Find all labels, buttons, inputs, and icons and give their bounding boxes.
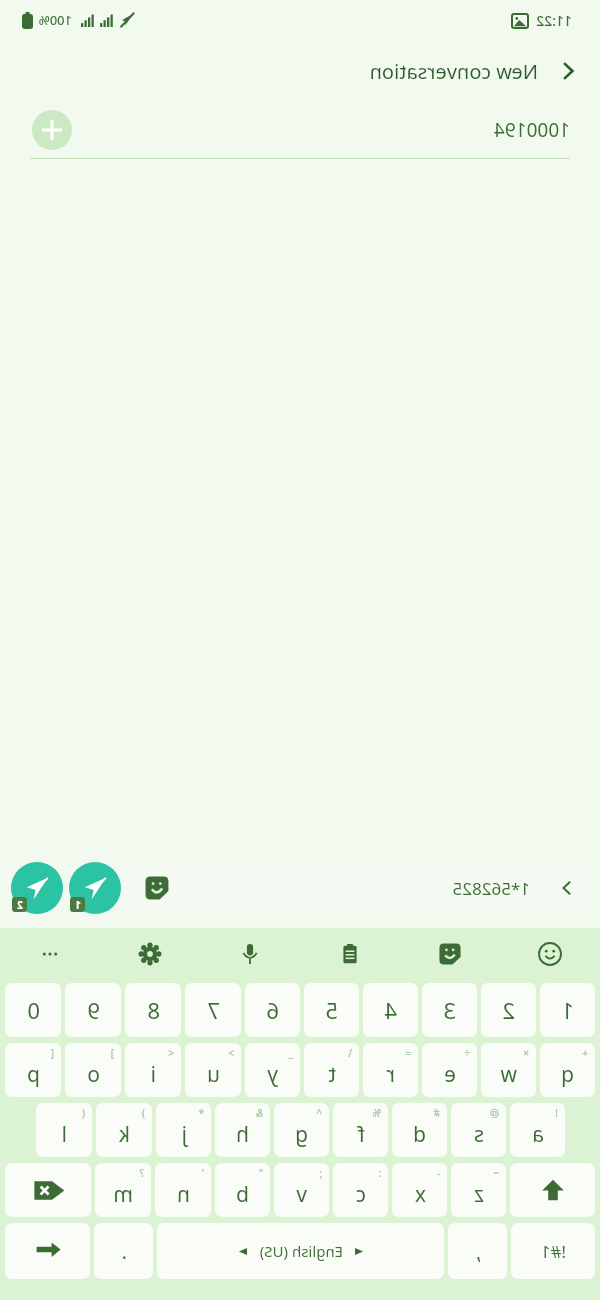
staticText: : <box>378 1166 381 1180</box>
button[interactable]: 9 <box>65 983 121 1037</box>
button[interactable]: Voice input <box>200 928 300 980</box>
button[interactable]: 2 <box>481 983 536 1037</box>
button[interactable]: # <box>392 1103 447 1157</box>
button[interactable]: Emoji <box>500 928 600 980</box>
staticText: = <box>405 1046 411 1060</box>
button[interactable]: 3 <box>422 983 477 1037</box>
staticText: m <box>113 1180 133 1209</box>
button[interactable]: × <box>481 1043 536 1097</box>
button[interactable]: ÷ <box>422 1043 477 1097</box>
staticText: _ <box>288 1046 293 1060</box>
staticText: 1 <box>561 995 574 1025</box>
staticText: f <box>357 1120 365 1149</box>
button[interactable]: & <box>215 1103 270 1157</box>
staticText: 0 <box>27 995 40 1025</box>
staticText: 1 <box>75 898 81 912</box>
staticText: * <box>198 1106 204 1120</box>
button[interactable]: % <box>333 1103 388 1157</box>
button[interactable]: \ <box>304 1043 359 1097</box>
staticText: @ <box>490 1106 499 1120</box>
button[interactable]: ) <box>96 1103 152 1157</box>
staticText: , <box>475 1238 481 1265</box>
button[interactable]: = <box>363 1043 418 1097</box>
staticText: j <box>181 1120 187 1149</box>
staticText: o <box>87 1060 100 1089</box>
staticText: ( <box>82 1106 85 1120</box>
button[interactable]: 5 <box>304 983 359 1037</box>
staticText: c <box>355 1180 366 1209</box>
button[interactable]: 7 <box>185 983 241 1037</box>
staticText: 9 <box>87 995 100 1025</box>
button[interactable]: " <box>215 1163 270 1217</box>
button[interactable]: More options <box>0 928 100 980</box>
button[interactable]: Stickers <box>400 928 500 980</box>
staticText: p <box>27 1060 40 1089</box>
button[interactable]: * <box>156 1103 211 1157</box>
staticText: 100% <box>38 11 72 29</box>
button[interactable]: ; <box>274 1163 329 1217</box>
button[interactable]: !#1 <box>511 1223 595 1279</box>
button[interactable]: 1*562825 <box>130 861 592 915</box>
staticText: q <box>561 1060 574 1089</box>
button[interactable]: 1 <box>540 983 595 1037</box>
button[interactable]: @ <box>451 1103 506 1157</box>
button[interactable]: Send with SIM 1 <box>66 859 124 917</box>
staticText: v <box>296 1180 307 1209</box>
button[interactable]: [ <box>5 1043 61 1097</box>
staticText: [ <box>50 1046 54 1060</box>
other: Expand <box>556 877 578 899</box>
staticText: > <box>228 1046 234 1060</box>
button[interactable]: 4 <box>363 983 418 1037</box>
button[interactable]: English (US) <box>157 1223 444 1279</box>
button[interactable]: Add recipient <box>30 108 74 152</box>
staticText: 1*562825 <box>452 877 530 900</box>
staticText: 2 <box>502 995 515 1025</box>
staticText: d <box>413 1120 426 1149</box>
button[interactable]: ^ <box>274 1103 329 1157</box>
button[interactable]: , <box>448 1223 507 1279</box>
staticText: ÷ <box>464 1046 470 1060</box>
button[interactable]: ' <box>155 1163 211 1217</box>
staticText: b <box>236 1180 249 1209</box>
button[interactable]: ( <box>36 1103 92 1157</box>
button[interactable]: : <box>333 1163 388 1217</box>
button[interactable]: 6 <box>245 983 300 1037</box>
button[interactable]: Enter <box>5 1223 90 1279</box>
button[interactable]: 8 <box>125 983 181 1037</box>
staticText: ^ <box>316 1106 322 1120</box>
button[interactable]: Clipboard <box>300 928 400 980</box>
button[interactable]: ? <box>95 1163 151 1217</box>
other: Back <box>554 57 582 85</box>
button[interactable]: Keyboard settings <box>100 928 200 980</box>
button[interactable]: _ <box>245 1043 300 1097</box>
staticText: 11:22 <box>536 11 572 30</box>
staticText: New conversation <box>369 58 538 85</box>
staticText: t <box>328 1060 336 1089</box>
staticText: r <box>386 1060 395 1089</box>
button[interactable]: Backspace <box>5 1163 91 1217</box>
button[interactable]: - <box>392 1163 447 1217</box>
staticText: 7 <box>207 995 220 1025</box>
staticText: 8 <box>147 995 160 1025</box>
button[interactable]: New conversation <box>369 57 582 85</box>
button[interactable]: 0 <box>5 983 61 1037</box>
staticText: s <box>473 1120 484 1149</box>
button[interactable]: ~ <box>451 1163 506 1217</box>
staticText: 5 <box>325 995 338 1025</box>
staticText: !#1 <box>540 1240 566 1263</box>
button[interactable]: Shift <box>510 1163 595 1217</box>
button[interactable]: > <box>185 1043 241 1097</box>
staticText: ; <box>319 1166 322 1180</box>
staticText: a <box>532 1120 544 1149</box>
button[interactable]: < <box>125 1043 181 1097</box>
staticText: " <box>258 1166 263 1180</box>
staticText: y <box>267 1060 278 1089</box>
button[interactable]: + <box>540 1043 595 1097</box>
button[interactable]: Send with SIM 2 <box>8 859 66 917</box>
button[interactable]: ] <box>65 1043 121 1097</box>
button[interactable]: . <box>94 1223 153 1279</box>
staticText: n <box>177 1180 190 1209</box>
staticText: 4 <box>384 995 397 1025</box>
button[interactable]: ! <box>510 1103 565 1157</box>
staticText: l <box>61 1120 67 1149</box>
